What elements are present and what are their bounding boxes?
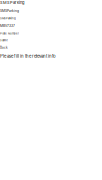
staticText: SMSParking <box>0 9 19 13</box>
staticText: SMSParking <box>0 0 24 5</box>
staticText: Please fill in the relevant info <box>0 53 56 59</box>
staticText: SMSParking <box>0 17 16 20</box>
staticText: Plate Number <box>0 32 19 35</box>
staticText: Submit <box>0 39 8 42</box>
staticText: MBV7337 <box>0 24 15 28</box>
staticText: Back <box>0 46 8 49</box>
